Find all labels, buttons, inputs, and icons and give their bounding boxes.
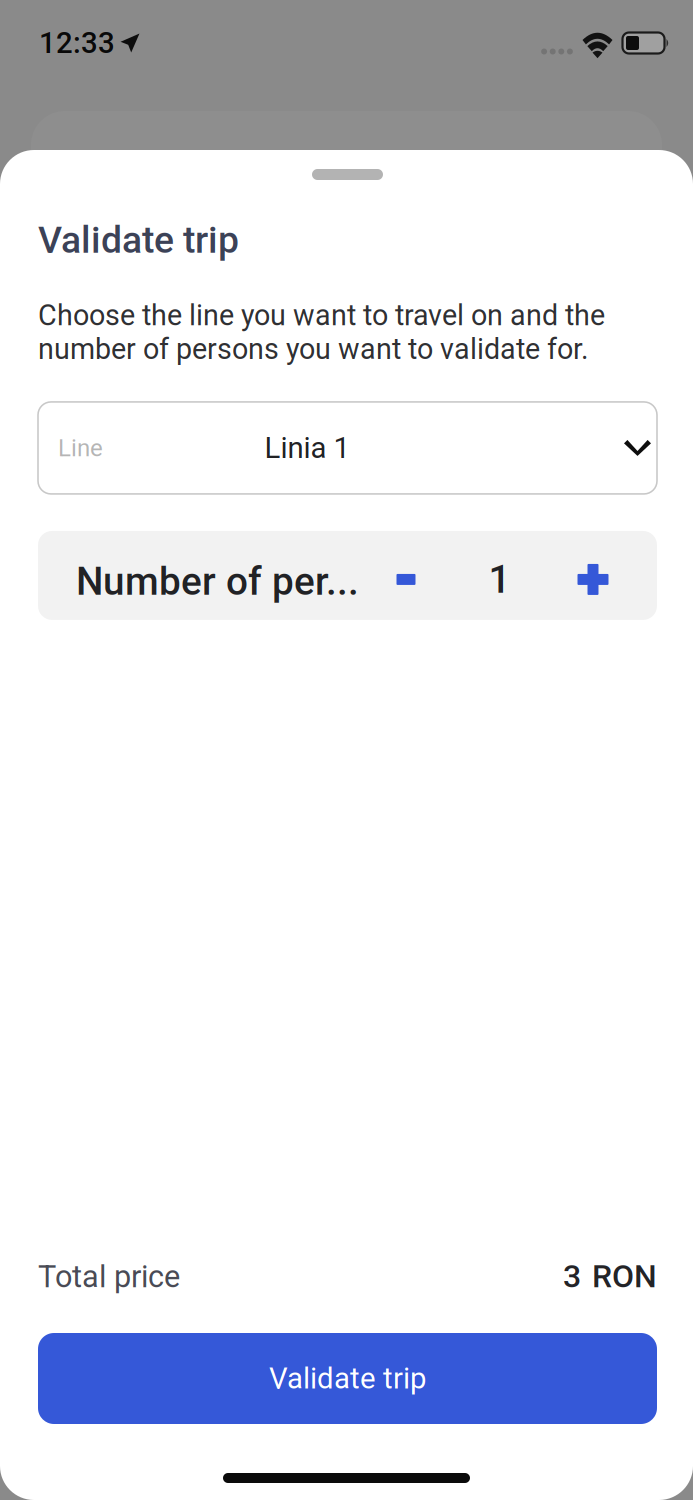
button[interactable]: Line bbox=[38, 402, 657, 494]
button[interactable]: Increase number of persons bbox=[546, 549, 640, 609]
staticText: Number of per... bbox=[76, 559, 359, 604]
button[interactable]: Decrease number of persons bbox=[359, 549, 453, 609]
staticText: Validate trip bbox=[38, 218, 239, 262]
staticText: Choose the line you want to travel on an… bbox=[38, 299, 605, 366]
staticText: RON bbox=[592, 1257, 657, 1295]
staticText: Total price bbox=[38, 1259, 180, 1295]
staticText: Linia 1 bbox=[264, 431, 349, 465]
staticText: 12:33 bbox=[39, 26, 115, 60]
staticText: Line bbox=[58, 434, 103, 462]
button[interactable]: Validate trip bbox=[38, 1333, 657, 1424]
staticText: 1 bbox=[488, 557, 510, 602]
staticText: Validate trip bbox=[269, 1361, 426, 1396]
staticText: 3 bbox=[563, 1257, 581, 1295]
